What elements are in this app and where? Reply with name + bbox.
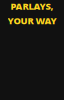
- staticText: PARLAYS,: [10, 0, 53, 12]
- staticText: YOUR WAY: [7, 14, 56, 27]
